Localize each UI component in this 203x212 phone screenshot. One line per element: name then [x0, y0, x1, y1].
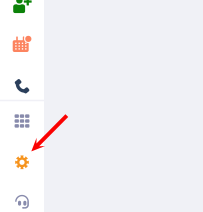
button[interactable]: Calls — [0, 65, 44, 100]
button[interactable]: Calendar — [0, 25, 44, 65]
button[interactable]: Keypad — [0, 101, 44, 141]
button[interactable]: Add contact — [0, 0, 44, 25]
button[interactable]: Support — [0, 182, 44, 212]
button[interactable]: Settings — [0, 141, 44, 182]
